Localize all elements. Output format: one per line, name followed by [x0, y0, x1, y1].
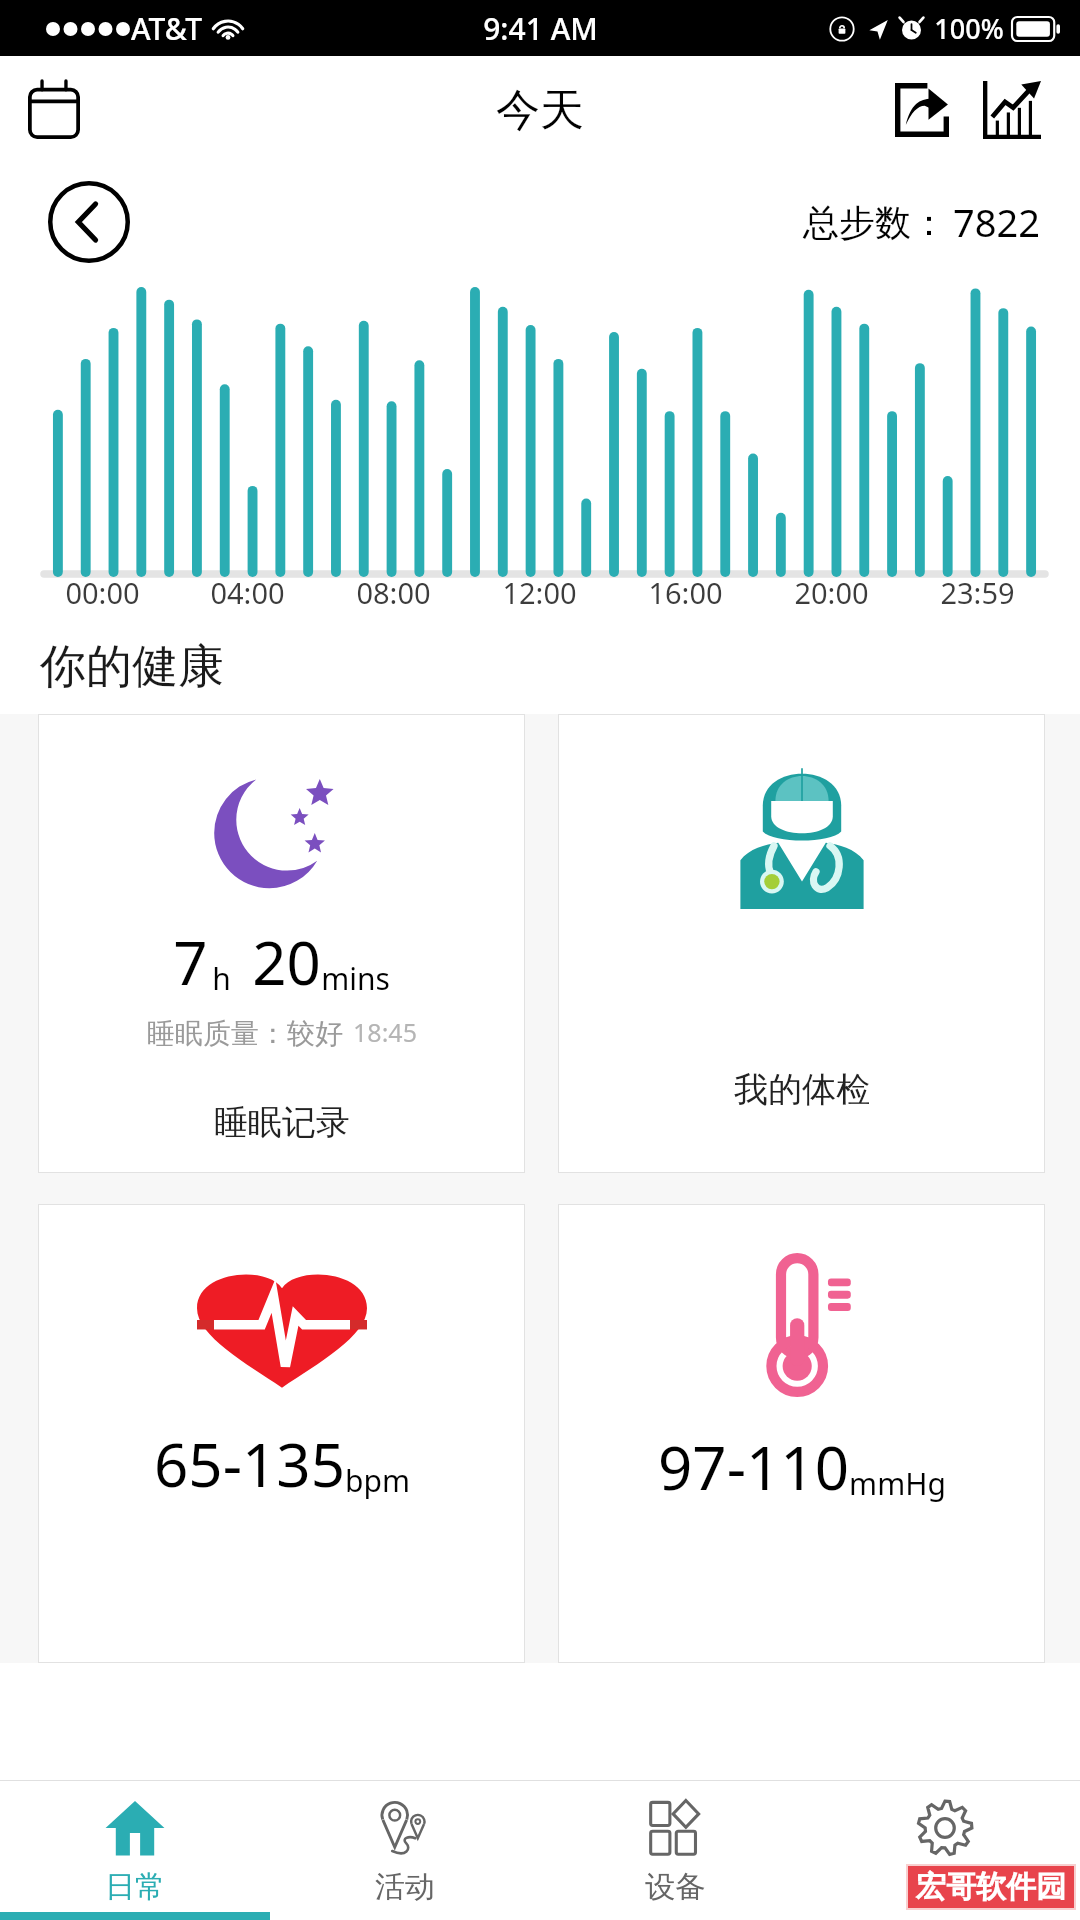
button[interactable]: 设备: [540, 1781, 810, 1920]
staticText: 设备: [645, 1868, 705, 1906]
staticText: 睡眠质量：较好: [147, 1016, 343, 1051]
button[interactable]: 65-135: [39, 1205, 524, 1662]
button[interactable]: 7: [39, 715, 524, 1172]
staticText: 12:00: [502, 573, 577, 612]
staticText: 18:45: [353, 1015, 417, 1049]
button[interactable]: 活动: [270, 1781, 540, 1920]
staticText: 20: [252, 921, 321, 1003]
staticText: 7822: [953, 196, 1040, 248]
staticText: 我的体检: [734, 1068, 870, 1111]
staticText: 宏哥软件园: [916, 1868, 1066, 1906]
staticText: 08:00: [356, 573, 431, 612]
staticText: 睡眠记录: [214, 1101, 350, 1144]
staticText: 总步数：: [803, 200, 947, 245]
staticText: 用户: [915, 1868, 975, 1906]
staticText: 23:59: [940, 573, 1015, 612]
button[interactable]: 日常: [0, 1781, 270, 1920]
button[interactable]: Statistics: [974, 72, 1050, 148]
button[interactable]: 我的体检: [559, 715, 1044, 1172]
staticText: 今天: [496, 83, 584, 138]
staticText: 日常: [105, 1868, 165, 1906]
staticText: 活动: [375, 1868, 435, 1906]
staticText: 04:00: [210, 573, 285, 612]
staticText: mins: [321, 958, 390, 999]
staticText: 20:00: [794, 573, 869, 612]
staticText: 97-110: [658, 1426, 849, 1508]
button[interactable]: 97-110: [559, 1205, 1044, 1662]
button[interactable]: Share: [884, 72, 960, 148]
staticText: 65-135: [154, 1423, 345, 1505]
staticText: bpm: [345, 1460, 410, 1501]
staticText: mmHg: [849, 1463, 946, 1504]
button[interactable]: Calendar: [18, 74, 90, 146]
staticText: AT&T: [131, 8, 202, 49]
staticText: 00:00: [65, 573, 140, 612]
button[interactable]: 用户: [810, 1781, 1080, 1920]
staticText: h: [212, 958, 231, 999]
staticText: 你的健康: [40, 638, 224, 696]
button[interactable]: Back: [48, 181, 130, 263]
staticText: 7: [173, 921, 208, 1003]
staticText: 100%: [934, 10, 1004, 47]
staticText: 16:00: [648, 573, 723, 612]
staticText: 9:41 AM: [483, 8, 598, 49]
